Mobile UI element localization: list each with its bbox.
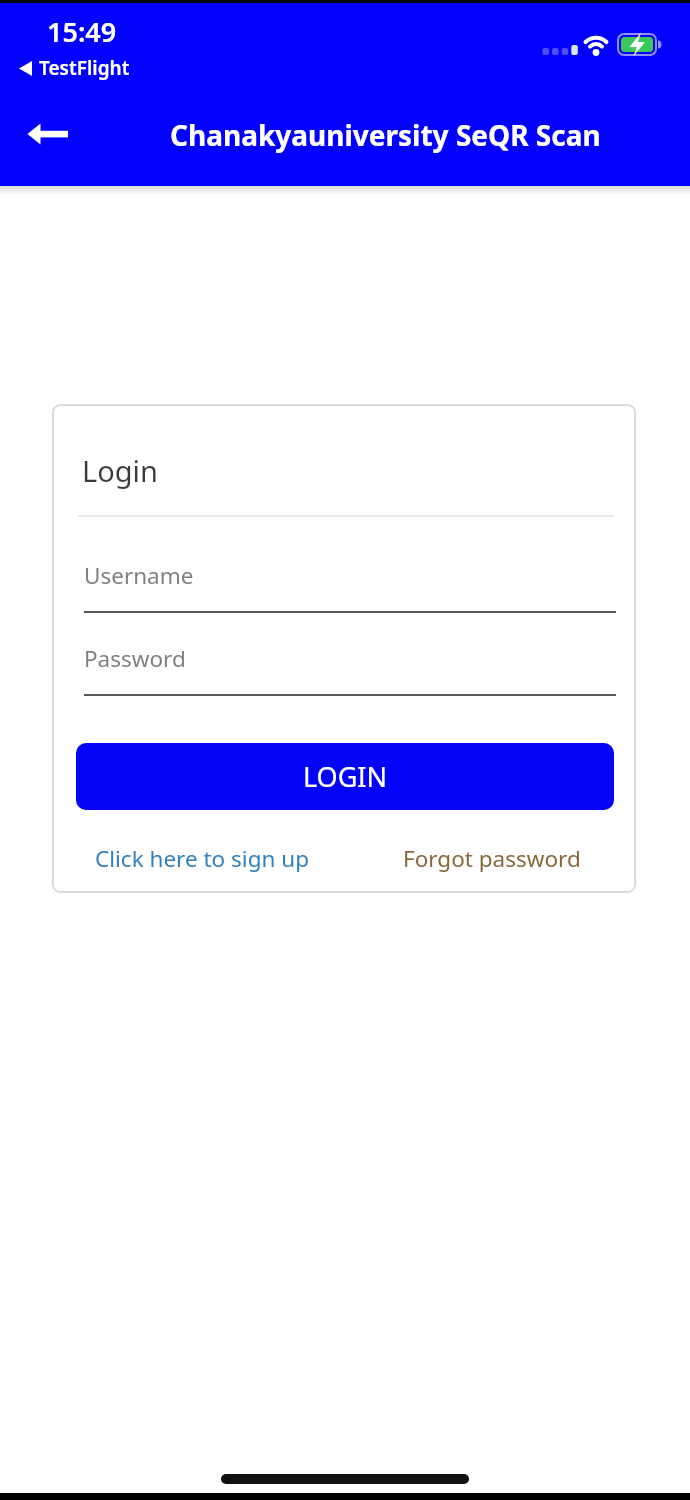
- staticText: Chanakyauniversity SeQR Scan: [170, 116, 601, 154]
- staticText: 15:49: [47, 13, 117, 50]
- staticText: Password: [84, 643, 186, 674]
- staticText: Forgot password: [403, 843, 581, 874]
- staticText: Login: [82, 451, 158, 490]
- button[interactable]: LOGIN: [76, 743, 614, 810]
- button[interactable]: [10, 110, 86, 166]
- staticText: TestFlight: [39, 55, 130, 81]
- staticText: LOGIN: [303, 758, 388, 795]
- button[interactable]: Forgot password: [392, 836, 570, 880]
- staticText: Click here to sign up: [95, 843, 309, 874]
- button[interactable]: Click here to sign up: [82, 836, 296, 880]
- staticText: Username: [84, 560, 194, 591]
